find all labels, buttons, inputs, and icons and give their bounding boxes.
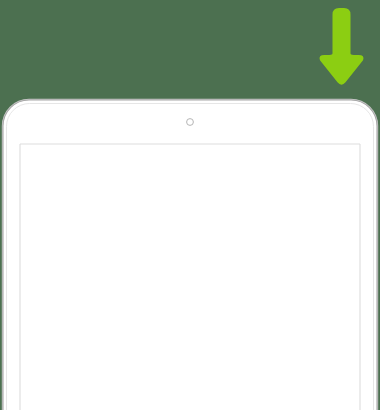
button[interactable]: Press the top button on the tablet <box>0 0 380 410</box>
